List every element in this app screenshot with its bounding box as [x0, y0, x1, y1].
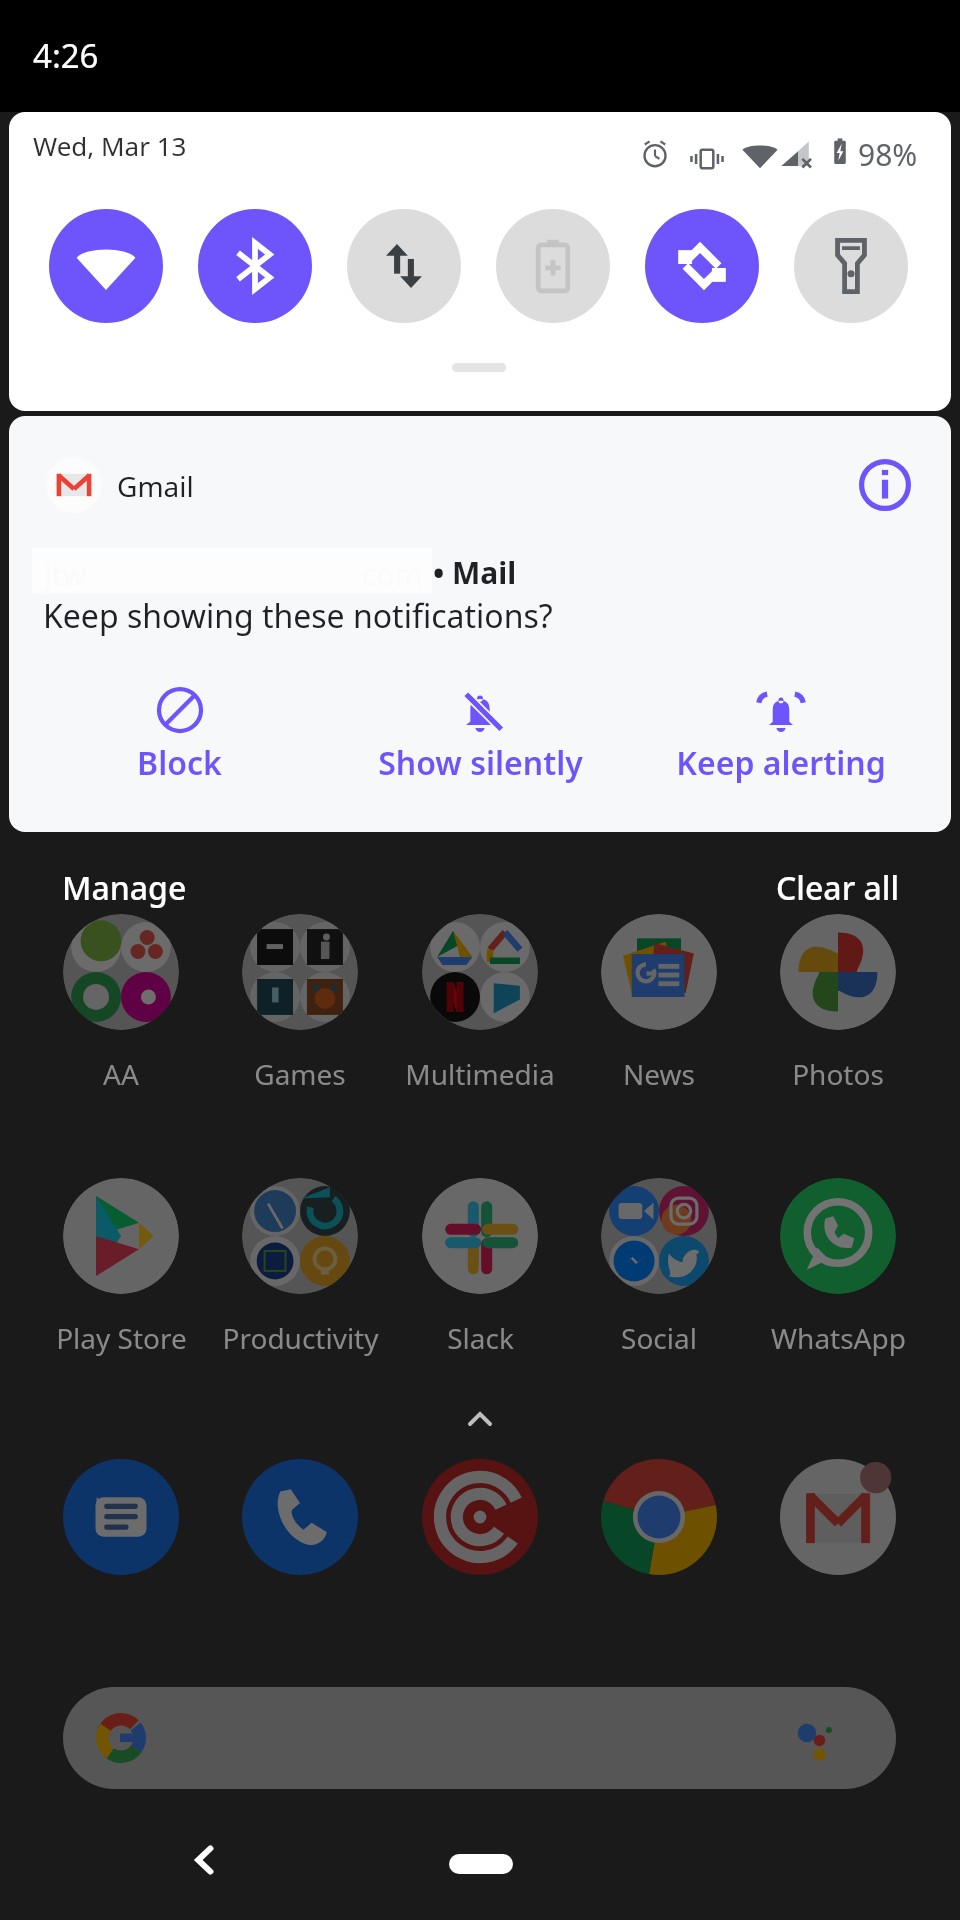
staticText: Multimedia: [405, 1055, 555, 1093]
button[interactable]: Flashlight: [794, 209, 908, 323]
staticText: Manage: [62, 866, 187, 910]
button[interactable]: [601, 914, 717, 1030]
button[interactable]: [63, 914, 179, 1030]
staticText: Photos: [792, 1055, 884, 1093]
button[interactable]: Chrome: [601, 1459, 717, 1575]
button[interactable]: Mobile data: [347, 209, 461, 323]
staticText: Keep alerting: [676, 741, 886, 785]
button[interactable]: [601, 1178, 717, 1294]
staticText: Block: [137, 741, 222, 785]
button[interactable]: Google Assistant: [63, 1687, 896, 1789]
staticText: 4:26: [33, 33, 99, 78]
button[interactable]: [780, 1178, 896, 1294]
staticText: Wed, Mar 13: [33, 128, 187, 163]
staticText: Clear all: [776, 866, 900, 910]
staticText: WhatsApp: [771, 1319, 906, 1357]
staticText: Games: [254, 1055, 346, 1093]
button[interactable]: Show silently: [340, 672, 620, 800]
staticText: Social: [621, 1319, 697, 1357]
button[interactable]: Bluetooth: [198, 209, 312, 323]
staticText: Show silently: [378, 741, 583, 785]
staticText: Keep showing these notifications?: [43, 594, 553, 638]
button[interactable]: Pocket Casts: [422, 1459, 538, 1575]
button[interactable]: [242, 914, 358, 1030]
button[interactable]: Gmail: [780, 1459, 896, 1575]
staticText: • Mail: [433, 552, 517, 593]
button[interactable]: Wi-Fi: [49, 209, 163, 323]
button[interactable]: [780, 914, 896, 1030]
staticText: Gmail: [117, 467, 194, 505]
button[interactable]: Clear all: [776, 866, 900, 910]
staticText: Productivity: [222, 1319, 379, 1357]
staticText: 98%: [858, 134, 918, 175]
button[interactable]: Battery Saver: [496, 209, 610, 323]
button[interactable]: Keep alerting: [641, 672, 921, 800]
button[interactable]: [63, 1178, 179, 1294]
button[interactable]: Phone: [242, 1459, 358, 1575]
button[interactable]: Messages: [63, 1459, 179, 1575]
button[interactable]: Auto-rotate: [645, 209, 759, 323]
staticText: News: [623, 1055, 695, 1093]
button[interactable]: Home: [449, 1854, 513, 1874]
button[interactable]: [422, 1178, 538, 1294]
staticText: Play Store: [56, 1319, 187, 1357]
button[interactable]: Block: [39, 672, 319, 800]
button[interactable]: [422, 914, 538, 1030]
button[interactable]: Back: [175, 1830, 235, 1890]
other: Google Assistant: [793, 1713, 843, 1763]
button[interactable]: Manage: [62, 866, 187, 910]
staticText: AA: [103, 1055, 139, 1093]
button[interactable]: [242, 1178, 358, 1294]
button[interactable]: Notification settings: [851, 451, 919, 519]
staticText: Slack: [447, 1319, 514, 1357]
